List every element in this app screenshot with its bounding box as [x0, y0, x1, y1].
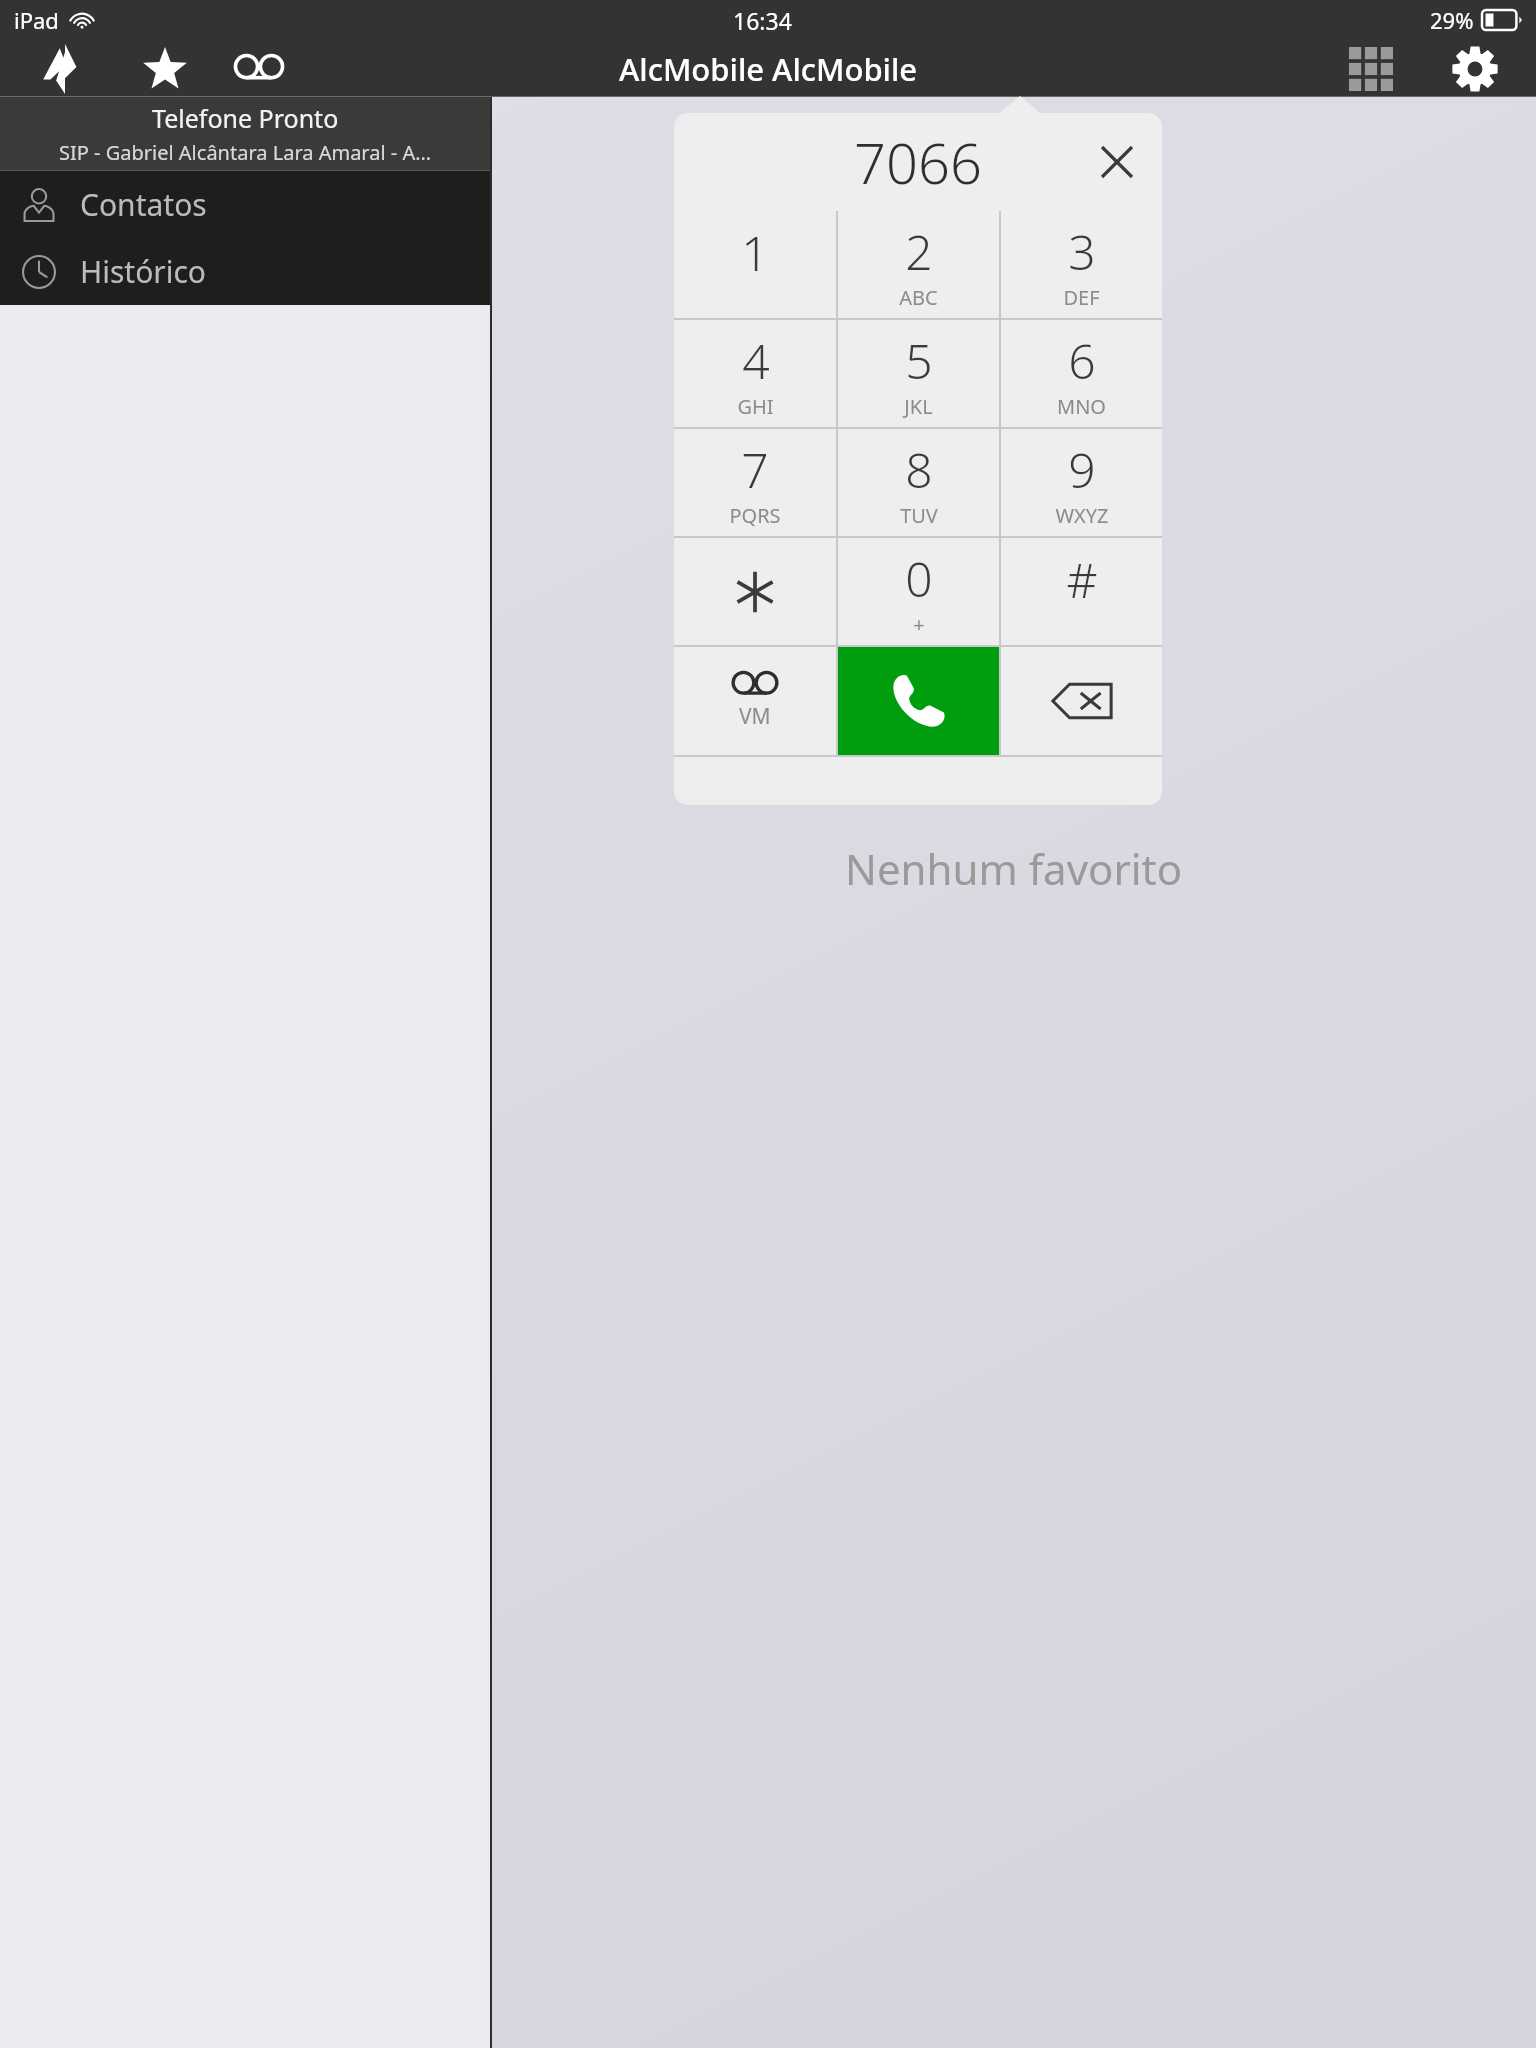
staticText: Telefone Pronto	[152, 101, 339, 135]
staticText: Contatos	[80, 184, 207, 225]
staticText: ABC	[899, 284, 938, 311]
staticText: Histórico	[80, 251, 206, 292]
staticText: #	[1066, 547, 1098, 612]
button[interactable]: Teclado	[1340, 40, 1402, 97]
staticText: 4	[742, 328, 770, 393]
button[interactable]: 8	[838, 429, 999, 536]
staticText: 9	[1068, 437, 1096, 502]
button[interactable]: 2	[838, 211, 999, 318]
staticText: 29%	[1430, 5, 1474, 35]
button[interactable]: Apagar	[1001, 647, 1162, 755]
staticText: VM	[739, 702, 771, 731]
staticText: 5	[905, 328, 933, 393]
button[interactable]: Histórico	[0, 238, 490, 305]
button[interactable]: 5	[838, 320, 999, 427]
staticText: +	[913, 611, 925, 638]
staticText: Nenhum favorito	[845, 840, 1183, 897]
staticText: 7066	[854, 124, 982, 200]
staticText: 0	[905, 546, 933, 611]
staticText: SIP - Gabriel Alcântara Lara Amaral - A…	[59, 139, 432, 166]
button[interactable]: Correio de voz	[230, 40, 288, 97]
button[interactable]: 9	[1001, 429, 1162, 536]
staticText: 3	[1068, 219, 1096, 284]
staticText: 6	[1068, 328, 1096, 393]
staticText: PQRS	[729, 502, 781, 529]
staticText: 1	[741, 220, 769, 285]
button[interactable]: 4	[674, 320, 836, 427]
button[interactable]: 0	[838, 538, 999, 645]
staticText: AlcMobile AlcMobile	[619, 48, 918, 90]
button[interactable]: 6	[1001, 320, 1162, 427]
button[interactable]: Correio de voz	[674, 647, 836, 755]
staticText: iPad	[14, 5, 59, 35]
button[interactable]: Fechar	[1090, 135, 1144, 189]
button[interactable]: 3	[1001, 211, 1162, 318]
button[interactable]: Asterisco	[674, 538, 836, 645]
button[interactable]: #	[1001, 538, 1162, 645]
button[interactable]: Configurações	[1444, 40, 1506, 97]
button[interactable]: Telefone Pronto	[0, 97, 490, 170]
staticText: 16:34	[733, 5, 792, 36]
button[interactable]: Ligar	[838, 647, 999, 755]
staticText: WXYZ	[1055, 502, 1109, 529]
staticText: GHI	[737, 393, 774, 420]
staticText: 8	[905, 437, 933, 502]
staticText: 7	[741, 437, 769, 502]
staticText: MNO	[1057, 393, 1106, 420]
button[interactable]: 7	[674, 429, 836, 536]
button[interactable]: Favoritos	[136, 40, 194, 97]
staticText: JKL	[904, 393, 933, 420]
staticText: 2	[905, 219, 933, 284]
button[interactable]: Contatos	[0, 171, 490, 238]
staticText: TUV	[900, 502, 938, 529]
staticText: DEF	[1063, 284, 1100, 311]
button[interactable]: 1	[674, 211, 836, 318]
button[interactable]: AlcMobile	[36, 40, 94, 97]
